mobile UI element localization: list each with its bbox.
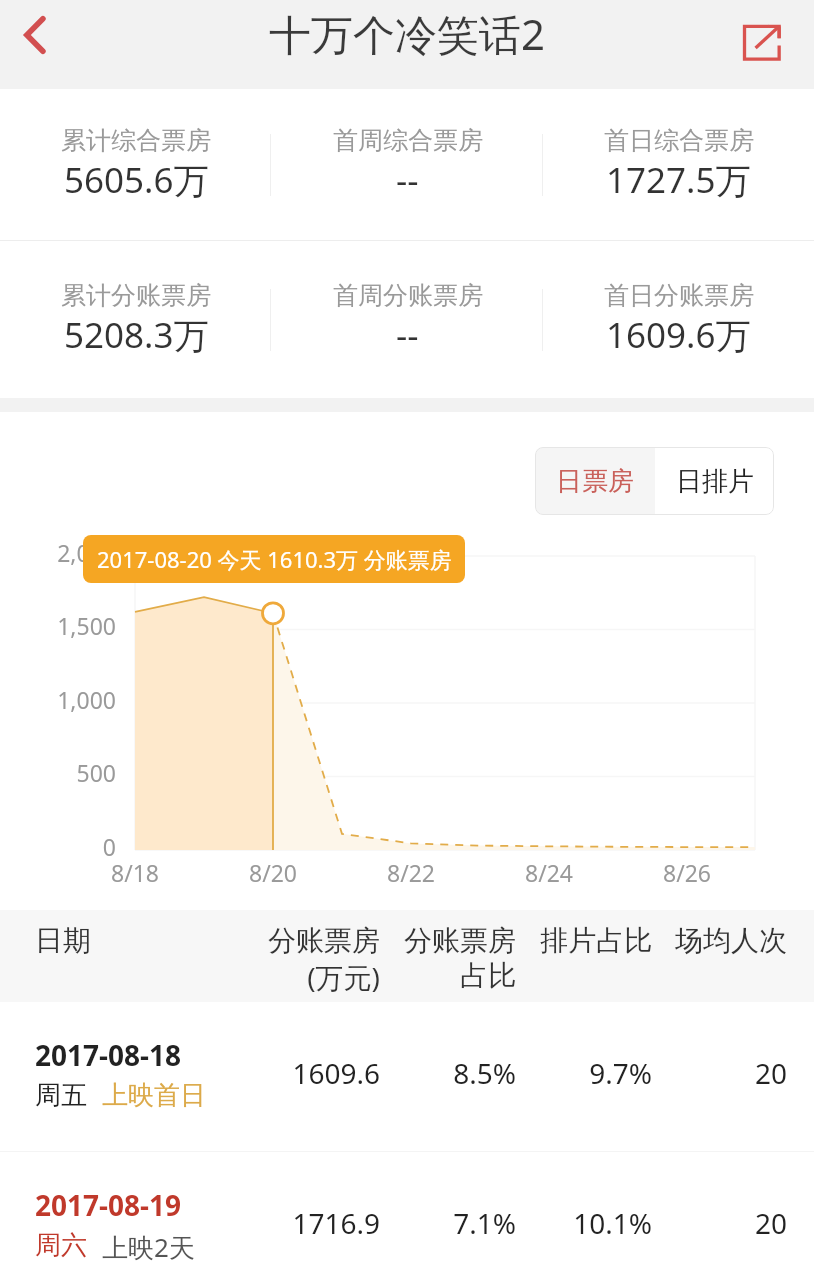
staticText: 十万个冷笑话2 bbox=[269, 5, 546, 62]
staticText: 排片占比 bbox=[492, 923, 652, 958]
staticText: 20 bbox=[627, 1204, 787, 1242]
staticText: 日票房 bbox=[556, 465, 634, 498]
staticText: 10.1% bbox=[492, 1204, 652, 1242]
staticText: 首日分账票房 bbox=[604, 280, 754, 311]
staticText: 1609.6万 bbox=[606, 311, 751, 359]
staticText: 2017-08-20 今天 1610.3万 分账票房 bbox=[97, 544, 452, 574]
staticText: 分账票房 bbox=[356, 923, 516, 958]
button[interactable]: 首周分账票房 bbox=[272, 241, 543, 398]
staticText: 1716.9 bbox=[220, 1204, 380, 1242]
button[interactable]: 首周综合票房 bbox=[272, 89, 543, 240]
button[interactable]: 日票房 bbox=[535, 447, 655, 515]
staticText: 1,000 bbox=[16, 684, 116, 715]
button[interactable]: 2017-08-19 bbox=[0, 1152, 814, 1280]
staticText: 上映首日 bbox=[102, 1079, 206, 1112]
button[interactable]: 2017-08-18 bbox=[0, 1002, 814, 1151]
staticText: 8/22 bbox=[361, 857, 461, 888]
button[interactable]: 首日分账票房 bbox=[543, 241, 814, 398]
staticText: 8/24 bbox=[499, 857, 599, 888]
staticText: 9.7% bbox=[492, 1054, 652, 1092]
button[interactable]: Back bbox=[0, 0, 70, 89]
staticText: (万元) bbox=[220, 958, 380, 996]
staticText: 占比 bbox=[356, 958, 516, 993]
button[interactable]: Share bbox=[706, 0, 814, 89]
staticText: 日排片 bbox=[676, 465, 754, 498]
staticText: 日期 bbox=[35, 923, 91, 958]
staticText: 首周分账票房 bbox=[333, 280, 483, 311]
staticText: 8/20 bbox=[223, 857, 323, 888]
button[interactable]: 首日综合票房 bbox=[543, 89, 814, 240]
staticText: 0 bbox=[16, 831, 116, 862]
staticText: 首日综合票房 bbox=[604, 125, 754, 156]
button[interactable]: 场均人次 bbox=[627, 923, 787, 958]
staticText: 累计综合票房 bbox=[61, 125, 211, 156]
staticText: 周五 bbox=[35, 1079, 87, 1112]
staticText: 场均人次 bbox=[627, 923, 787, 958]
staticText: 5208.3万 bbox=[64, 311, 209, 359]
staticText: 2017-08-19 bbox=[35, 1186, 182, 1224]
staticText: 累计分账票房 bbox=[61, 280, 211, 311]
staticText: 8/18 bbox=[85, 857, 185, 888]
staticText: 500 bbox=[16, 757, 116, 788]
button[interactable]: 分账票房 bbox=[356, 923, 516, 993]
staticText: 周六 bbox=[35, 1229, 87, 1262]
button[interactable]: 分账票房 bbox=[220, 923, 380, 996]
staticText: 2,000 bbox=[16, 537, 116, 568]
staticText: 1609.6 bbox=[220, 1054, 380, 1092]
staticText: 8/26 bbox=[637, 857, 737, 888]
button[interactable]: 累计分账票房 bbox=[0, 241, 272, 398]
staticText: -- bbox=[396, 311, 419, 359]
staticText: 5605.6万 bbox=[64, 156, 209, 204]
staticText: 分账票房 bbox=[220, 923, 380, 958]
staticText: 2017-08-18 bbox=[35, 1036, 182, 1074]
staticText: 上映2天 bbox=[102, 1229, 195, 1265]
staticText: 20 bbox=[627, 1054, 787, 1092]
staticText: 1727.5万 bbox=[606, 156, 751, 204]
staticText: 8.5% bbox=[356, 1054, 516, 1092]
button[interactable]: 日排片 bbox=[655, 447, 774, 515]
staticText: -- bbox=[396, 156, 419, 204]
staticText: 1,500 bbox=[16, 610, 116, 641]
staticText: 7.1% bbox=[356, 1204, 516, 1242]
button[interactable]: 累计综合票房 bbox=[0, 89, 272, 240]
staticText: 首周综合票房 bbox=[333, 125, 483, 156]
button[interactable]: 排片占比 bbox=[492, 923, 652, 958]
